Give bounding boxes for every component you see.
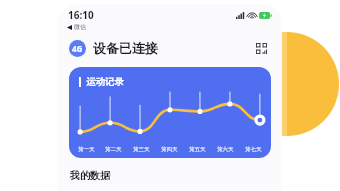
staticText: 我的数据: [70, 169, 110, 182]
staticText: 第七天: [245, 146, 262, 153]
button[interactable]: Scan QR code: [251, 38, 271, 58]
staticText: 第六天: [217, 146, 234, 153]
staticText: 第二天: [105, 146, 122, 153]
staticText: 微信: [74, 23, 86, 31]
staticText: 4G: [72, 43, 83, 54]
staticText: 16:10: [68, 8, 94, 22]
staticText: 第三天: [133, 146, 150, 153]
staticText: 设备已连接: [93, 40, 158, 56]
staticText: 第一天: [78, 146, 95, 153]
button[interactable]: 4G: [69, 40, 86, 57]
staticText: 运动记录: [86, 76, 124, 88]
staticText: 第五天: [189, 146, 206, 153]
button[interactable]: 运动记录: [69, 67, 271, 158]
staticText: 第四天: [161, 146, 178, 153]
